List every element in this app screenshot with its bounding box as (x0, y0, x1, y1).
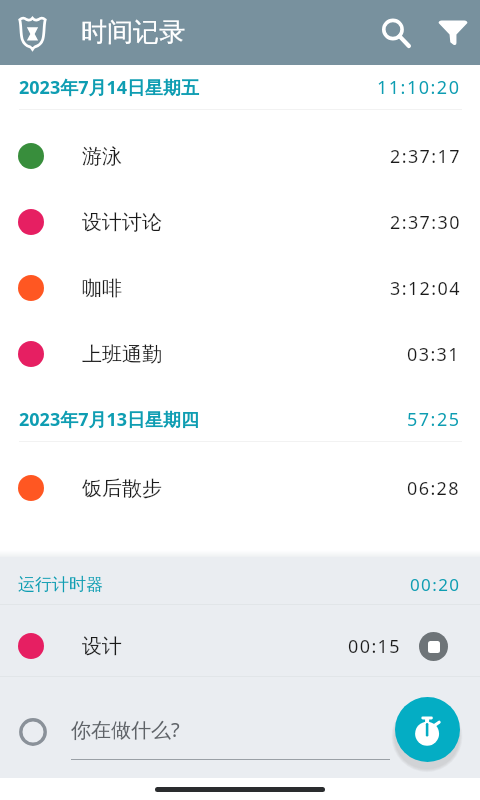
staticText: 饭后散步 (82, 476, 162, 501)
button[interactable]: 咖啡 (0, 255, 480, 321)
button[interactable]: 上班通勤 (0, 321, 480, 387)
button[interactable]: Search (372, 9, 420, 57)
staticText: 时间记录 (81, 16, 185, 49)
staticText: 运行计时器 (18, 574, 103, 595)
staticText: 咖啡 (82, 276, 122, 301)
staticText: 你在做什么? (71, 716, 180, 743)
staticText: 06:28 (407, 476, 461, 501)
button[interactable]: 游泳 (0, 123, 480, 189)
button[interactable]: 饭后散步 (0, 455, 480, 521)
staticText: 11:10:20 (377, 75, 461, 100)
staticText: 00:15 (348, 634, 402, 659)
staticText: 上班通勤 (82, 342, 162, 367)
button[interactable]: Filter (429, 9, 477, 57)
button[interactable]: 设计讨论 (0, 189, 480, 255)
staticText: 57:25 (407, 407, 461, 432)
staticText: 游泳 (82, 144, 122, 169)
button[interactable]: 设计 (0, 605, 480, 676)
button[interactable]: Start timer (395, 697, 460, 762)
staticText: 2:37:17 (390, 144, 461, 169)
staticText: 2023年7月14日星期五 (19, 75, 200, 100)
staticText: 2:37:30 (390, 210, 461, 235)
staticText: 2023年7月13日星期四 (19, 407, 200, 432)
button[interactable]: Open navigation (10, 11, 54, 55)
staticText: 03:31 (407, 342, 461, 367)
staticText: 3:12:04 (390, 276, 461, 301)
staticText: 设计 (82, 634, 122, 659)
staticText: 00:20 (410, 573, 461, 596)
button[interactable]: Stop timer (419, 632, 448, 661)
staticText: 设计讨论 (82, 210, 162, 235)
